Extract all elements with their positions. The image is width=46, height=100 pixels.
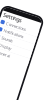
button[interactable]: Display <box>0 45 30 52</box>
staticText: General <box>0 53 10 59</box>
button[interactable]: Connections <box>0 22 30 29</box>
staticText: Settings <box>0 15 10 22</box>
staticText: Sounds <box>0 38 8 43</box>
button[interactable]: Notifications <box>0 30 30 37</box>
button[interactable]: General <box>0 52 30 60</box>
staticText: Notifications <box>0 31 17 36</box>
staticText: Connections <box>0 23 17 28</box>
button[interactable]: Sounds <box>0 37 30 44</box>
staticText: Display <box>0 46 9 51</box>
